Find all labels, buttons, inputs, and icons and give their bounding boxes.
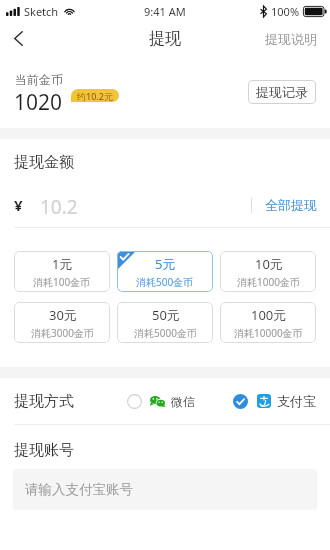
- staticText: 100%: [271, 4, 300, 19]
- button[interactable]: 全部提现: [252, 194, 317, 216]
- button[interactable]: 提现说明: [265, 22, 317, 55]
- button[interactable]: 1元: [14, 251, 110, 292]
- staticText: 全部提现: [265, 197, 317, 213]
- staticText: 30元: [49, 306, 77, 324]
- staticText: 提现记录: [256, 84, 308, 100]
- staticText: 1元: [52, 255, 73, 273]
- staticText: 请输入支付宝账号: [25, 481, 133, 498]
- staticText: 9:41 AM: [144, 4, 186, 19]
- button[interactable]: 5元: [117, 251, 213, 292]
- staticText: 50元: [152, 306, 180, 324]
- staticText: 支付宝: [277, 393, 316, 409]
- staticText: ¥: [14, 195, 23, 215]
- staticText: 消耗1000金币: [237, 275, 300, 289]
- staticText: 微信: [171, 394, 195, 409]
- staticText: 约10.2元: [77, 90, 113, 102]
- button[interactable]: 100元: [220, 302, 316, 343]
- staticText: 消耗500金币: [136, 275, 194, 289]
- button[interactable]: 30元: [14, 302, 110, 343]
- staticText: 提现方式: [14, 392, 74, 411]
- staticText: 消耗3000金币: [31, 326, 94, 340]
- staticText: 提现: [149, 29, 181, 49]
- button[interactable]: 10元: [220, 251, 316, 292]
- staticText: 消耗10000金币: [234, 326, 303, 340]
- button[interactable]: 微信: [127, 394, 195, 409]
- staticText: 提现说明: [265, 31, 317, 47]
- staticText: 消耗100金币: [33, 275, 91, 289]
- button[interactable]: Back: [0, 22, 36, 55]
- staticText: 100元: [251, 306, 287, 324]
- staticText: 5元: [155, 255, 176, 273]
- button[interactable]: 请输入支付宝账号: [13, 469, 317, 510]
- button[interactable]: 50元: [117, 302, 213, 343]
- button[interactable]: 提现记录: [248, 80, 316, 104]
- staticText: 1020: [14, 88, 63, 117]
- staticText: 10.2: [40, 194, 78, 216]
- staticText: 10元: [255, 255, 283, 273]
- staticText: 消耗5000金币: [134, 326, 197, 340]
- staticText: 提现账号: [14, 441, 74, 460]
- button[interactable]: 支付宝: [233, 393, 316, 409]
- staticText: 当前金币: [15, 72, 63, 87]
- staticText: 提现金额: [14, 153, 74, 172]
- staticText: Sketch: [24, 4, 59, 19]
